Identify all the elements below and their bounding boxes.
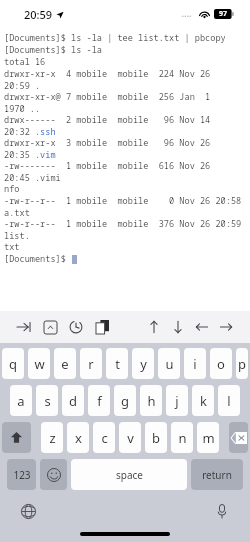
staticText: i bbox=[193, 355, 197, 373]
staticText: y bbox=[140, 355, 147, 373]
staticText: total 16 bbox=[4, 56, 46, 68]
staticText: b bbox=[152, 429, 160, 447]
button[interactable]: n bbox=[171, 422, 193, 453]
staticText: n bbox=[178, 429, 187, 447]
staticText: v bbox=[127, 429, 134, 447]
button[interactable]: History bbox=[64, 315, 88, 339]
staticText: drwx------ 2 mobile mobile 96 Nov 14 20:… bbox=[4, 114, 250, 137]
button[interactable]: u bbox=[158, 348, 180, 379]
button[interactable]: k bbox=[192, 385, 214, 416]
button[interactable]: Control bbox=[38, 315, 62, 339]
staticText: return bbox=[202, 468, 232, 482]
staticText: s bbox=[44, 392, 51, 410]
button[interactable] bbox=[2, 422, 31, 453]
staticText: 20:59 bbox=[24, 7, 53, 22]
staticText: w bbox=[34, 355, 45, 373]
staticText: 123 bbox=[13, 468, 31, 482]
staticText: e bbox=[61, 355, 69, 373]
button[interactable]: c bbox=[93, 422, 115, 453]
staticText: u bbox=[165, 355, 174, 373]
button[interactable]: f bbox=[88, 385, 110, 416]
button[interactable]: Up bbox=[142, 315, 166, 339]
staticText: m bbox=[202, 429, 215, 447]
staticText: f bbox=[97, 392, 102, 410]
staticText: [Documents]$ ls -la | tee list.txt | pbc… bbox=[4, 32, 226, 44]
button[interactable]: e bbox=[54, 348, 76, 379]
staticText: [Documents]$ bbox=[4, 253, 72, 265]
staticText: t bbox=[115, 355, 120, 373]
staticText: k bbox=[200, 392, 207, 410]
staticText: -rw-r--r-- 1 mobile mobile 376 Nov 26 20… bbox=[4, 218, 250, 241]
staticText: nfo bbox=[4, 183, 20, 195]
staticText: [Documents]$ ls -la bbox=[4, 44, 102, 56]
staticText: r bbox=[88, 355, 94, 373]
button[interactable]: x bbox=[67, 422, 89, 453]
button[interactable]: s bbox=[36, 385, 58, 416]
button[interactable]: v bbox=[119, 422, 141, 453]
button[interactable]: t bbox=[106, 348, 128, 379]
button[interactable]: y bbox=[132, 348, 154, 379]
button[interactable]: h bbox=[140, 385, 162, 416]
button[interactable]: space bbox=[71, 459, 187, 490]
staticText: o bbox=[217, 355, 225, 373]
button[interactable] bbox=[40, 459, 67, 490]
button[interactable]: Switch keyboard bbox=[16, 499, 40, 523]
staticText: a bbox=[17, 392, 25, 410]
button[interactable]: b bbox=[145, 422, 167, 453]
button[interactable]: i bbox=[184, 348, 206, 379]
staticText: -rw------- 1 mobile mobile 616 Nov 26 20… bbox=[4, 160, 250, 183]
button[interactable]: Down bbox=[166, 315, 190, 339]
staticText: j bbox=[175, 392, 179, 410]
button[interactable]: Tab bbox=[12, 315, 36, 339]
staticText: h bbox=[147, 392, 156, 410]
button[interactable]: r bbox=[80, 348, 102, 379]
button[interactable]: 123 bbox=[7, 459, 36, 490]
staticText: -rw-r--r-- 1 mobile mobile 0 Nov 26 20:5… bbox=[4, 195, 250, 218]
button[interactable]: z bbox=[41, 422, 63, 453]
button[interactable]: Right bbox=[214, 315, 238, 339]
button[interactable]: q bbox=[2, 348, 24, 379]
staticText: l bbox=[227, 392, 231, 410]
staticText: q bbox=[9, 355, 17, 373]
staticText: c bbox=[101, 429, 108, 447]
button[interactable]: o bbox=[210, 348, 232, 379]
button[interactable]: w bbox=[28, 348, 50, 379]
staticText: 97 bbox=[219, 9, 228, 19]
button[interactable]: Paste bbox=[90, 315, 114, 339]
staticText: space bbox=[116, 468, 143, 482]
staticText: d bbox=[69, 392, 77, 410]
staticText: g bbox=[121, 392, 129, 410]
button[interactable]: j bbox=[166, 385, 188, 416]
staticText: p bbox=[238, 355, 246, 373]
button[interactable]: m bbox=[197, 422, 219, 453]
staticText: x bbox=[75, 429, 82, 447]
button[interactable] bbox=[229, 422, 248, 453]
button[interactable]: d bbox=[62, 385, 84, 416]
button[interactable]: a bbox=[10, 385, 32, 416]
staticText: z bbox=[49, 429, 56, 447]
staticText: drwxr-xr-x@ 7 mobile mobile 256 Jan 1 19… bbox=[4, 91, 250, 114]
button[interactable]: p bbox=[236, 348, 248, 379]
button[interactable]: l bbox=[218, 385, 240, 416]
staticText: drwxr-xr-x 3 mobile mobile 96 Nov 26 20:… bbox=[4, 137, 250, 160]
button[interactable]: Left bbox=[190, 315, 214, 339]
button[interactable]: return bbox=[191, 459, 243, 490]
button[interactable]: Dictate bbox=[210, 499, 234, 523]
staticText: txt bbox=[4, 241, 20, 253]
staticText: drwxr-xr-x 4 mobile mobile 224 Nov 26 20… bbox=[4, 68, 250, 91]
button[interactable]: g bbox=[114, 385, 136, 416]
